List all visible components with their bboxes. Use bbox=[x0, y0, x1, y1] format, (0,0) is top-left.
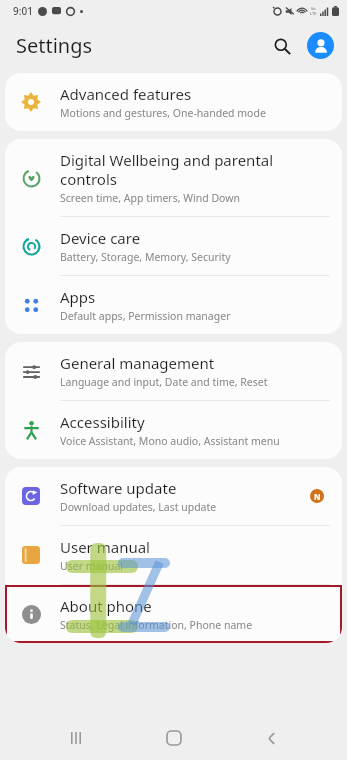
staticText: Voice Assistant, Mono audio, Assistant m… bbox=[60, 434, 280, 448]
button[interactable]: Recents bbox=[55, 717, 97, 759]
staticText: LTE bbox=[310, 11, 317, 16]
staticText: Advanced features bbox=[60, 84, 192, 104]
staticText: Software update bbox=[60, 478, 177, 498]
staticText: Apps bbox=[60, 287, 96, 307]
staticText: Accessibility bbox=[60, 412, 145, 432]
button[interactable]: General management bbox=[5, 342, 342, 400]
staticText: Status, Legal information, Phone name bbox=[60, 618, 253, 632]
button[interactable]: Digital Wellbeing and parental controls bbox=[5, 139, 342, 216]
button[interactable]: About phone bbox=[5, 585, 342, 643]
staticText: Settings bbox=[16, 32, 93, 59]
staticText: User manual bbox=[60, 559, 123, 573]
staticText: Download updates, Last update bbox=[60, 500, 217, 514]
button[interactable]: Software update bbox=[5, 467, 342, 525]
staticText: Device care bbox=[60, 228, 141, 248]
staticText: Screen time, App timers, Wind Down bbox=[60, 191, 240, 205]
staticText: Vo bbox=[311, 6, 316, 11]
staticText: Digital Wellbeing and parental controls bbox=[60, 150, 330, 189]
staticText: Motions and gestures, One-handed mode bbox=[60, 106, 266, 120]
button[interactable]: Device care bbox=[5, 217, 342, 275]
button[interactable]: User manual bbox=[5, 526, 342, 584]
staticText: User manual bbox=[60, 537, 150, 557]
button[interactable]: Account bbox=[307, 32, 334, 59]
staticText: 9:01 bbox=[13, 4, 33, 18]
button[interactable]: Back bbox=[250, 717, 292, 759]
staticText: Default apps, Permission manager bbox=[60, 309, 231, 323]
staticText: Language and input, Date and time, Reset bbox=[60, 375, 268, 389]
button[interactable]: Apps bbox=[5, 276, 342, 334]
button[interactable]: Search bbox=[269, 33, 295, 59]
button[interactable]: Home bbox=[153, 717, 195, 759]
button[interactable]: Advanced features bbox=[5, 73, 342, 131]
staticText: General management bbox=[60, 353, 215, 373]
staticText: Battery, Storage, Memory, Security bbox=[60, 250, 231, 264]
staticText: About phone bbox=[60, 596, 152, 616]
staticText: N bbox=[314, 491, 321, 502]
button[interactable]: Accessibility bbox=[5, 401, 342, 459]
